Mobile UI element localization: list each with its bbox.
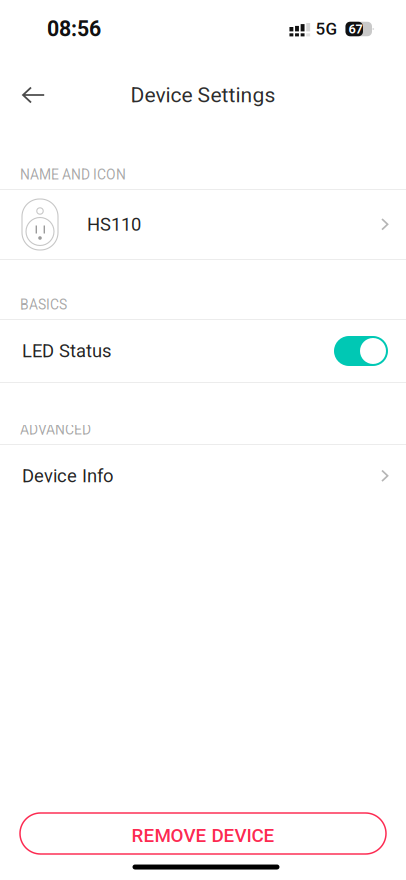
button[interactable]: REMOVE DEVICE bbox=[20, 813, 386, 854]
button[interactable]: Back bbox=[0, 58, 61, 132]
staticText: REMOVE DEVICE bbox=[131, 824, 274, 846]
staticText: NAME AND ICON bbox=[20, 167, 126, 183]
staticText: LED Status bbox=[22, 340, 111, 362]
staticText: BASICS bbox=[20, 297, 67, 313]
staticText: Device Settings bbox=[130, 83, 275, 107]
button[interactable]: LED Status bbox=[0, 320, 406, 382]
staticText: HS110 bbox=[87, 214, 141, 235]
staticText: ADVANCED bbox=[20, 422, 91, 438]
button[interactable]: HS110 bbox=[0, 190, 406, 259]
staticText: 5G bbox=[315, 19, 337, 39]
button[interactable]: Device Info bbox=[0, 445, 406, 507]
staticText: 67 bbox=[348, 21, 362, 36]
staticText: Device Info bbox=[22, 465, 113, 487]
staticText: 08:56 bbox=[47, 16, 101, 41]
